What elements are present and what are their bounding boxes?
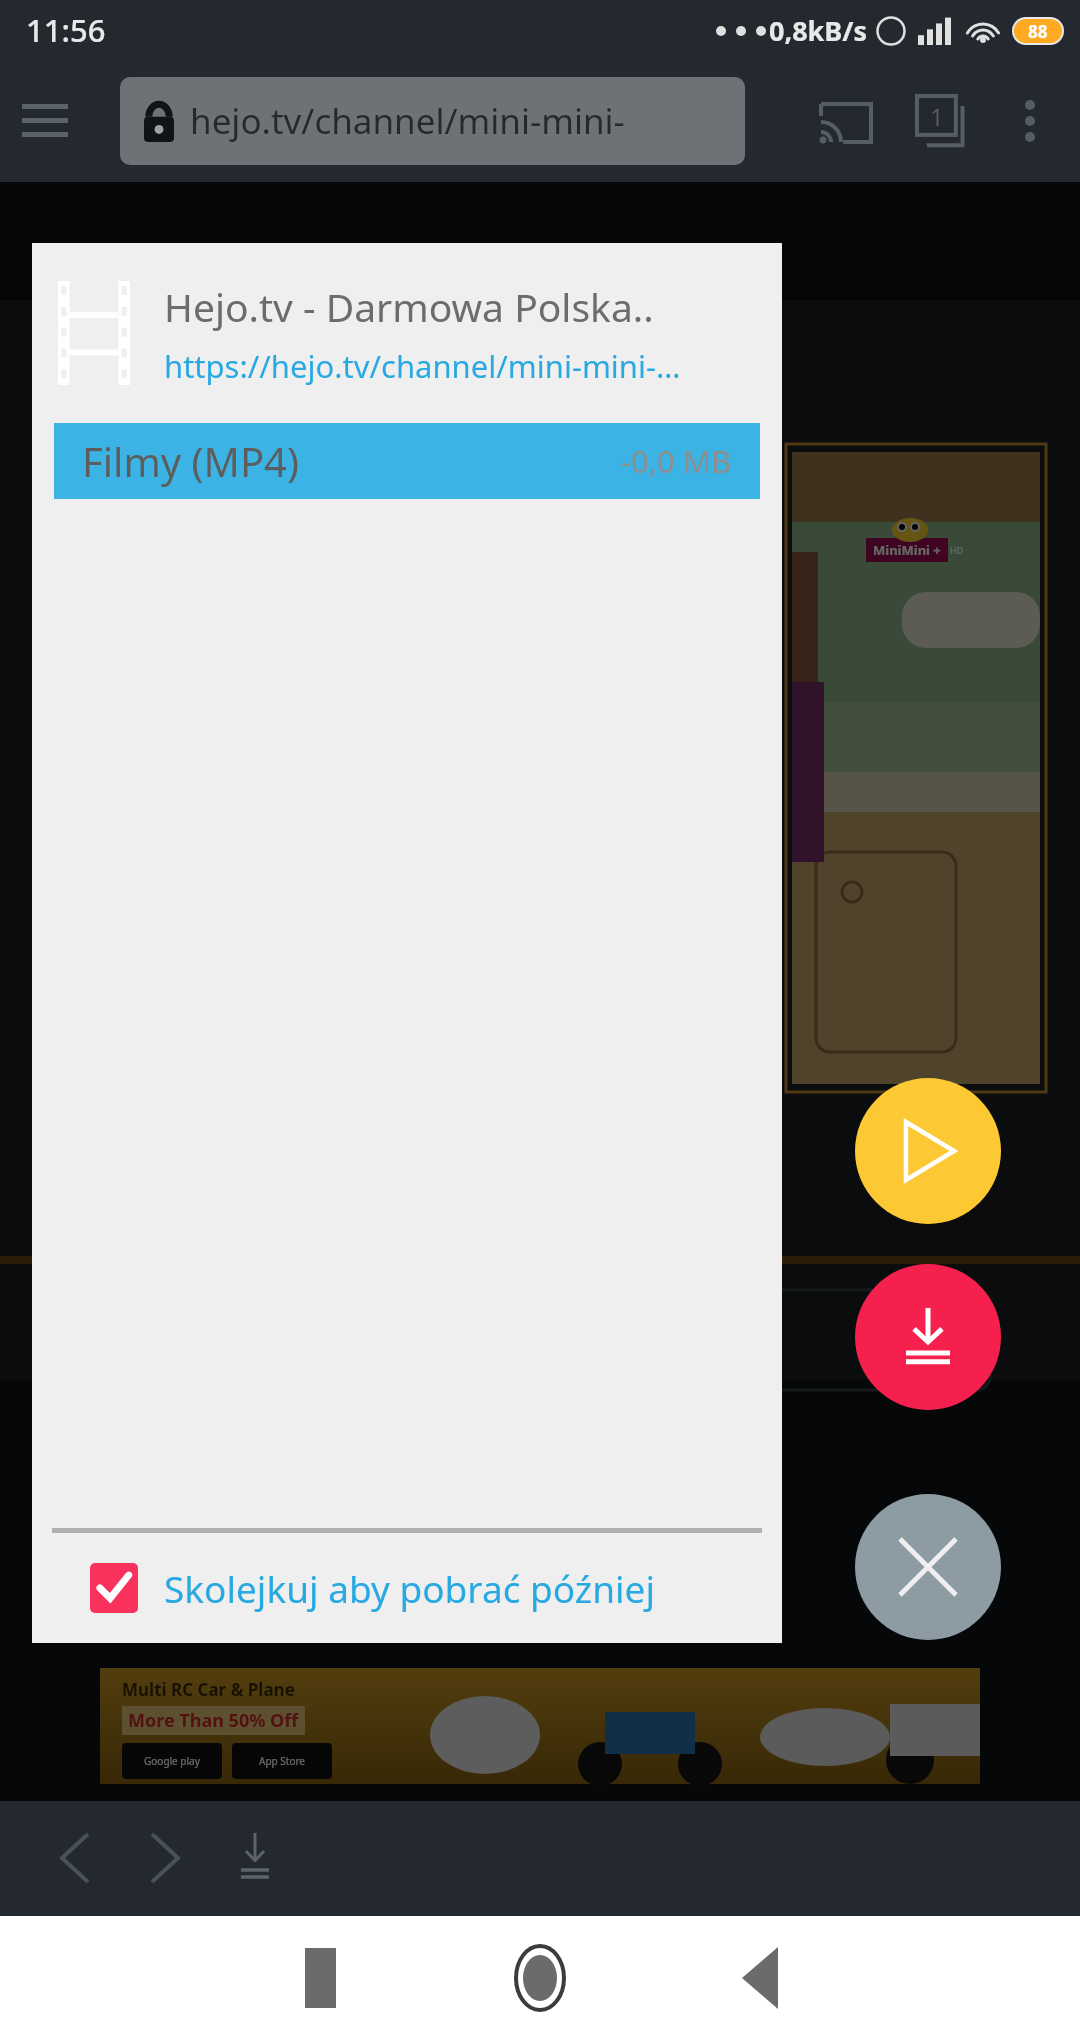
button[interactable]: Download xyxy=(855,1264,1001,1410)
button[interactable]: Close xyxy=(855,1494,1001,1640)
button[interactable]: Back xyxy=(30,1813,120,1903)
button[interactable]: Skolejkuj aby pobrać później xyxy=(32,1533,782,1643)
staticText: 88 xyxy=(1028,20,1048,43)
button[interactable]: Home xyxy=(485,1923,595,2033)
staticText: More Than 50% Off xyxy=(128,1708,299,1733)
staticText: 11:56 xyxy=(26,9,106,51)
staticText: App Store xyxy=(259,1754,306,1768)
button[interactable]: Play xyxy=(855,1078,1001,1224)
button[interactable]: Tabs xyxy=(894,73,990,169)
staticText: MiniMini + xyxy=(873,541,941,559)
staticText: Google play xyxy=(144,1754,200,1768)
staticText: Skolejkuj aby pobrać później xyxy=(164,1563,656,1613)
staticText: 0,8kB/s xyxy=(769,12,868,49)
button[interactable]: hejo.tv/channel/mini-mini- xyxy=(120,77,745,165)
staticText: https://hejo.tv/channel/mini-mini-… xyxy=(164,345,681,387)
staticText: Hejo.tv - Darmowa Polska.. xyxy=(164,280,654,333)
button[interactable]: Cast xyxy=(798,73,894,169)
button[interactable]: Back xyxy=(705,1923,815,2033)
staticText: -0,0 MB xyxy=(621,440,732,482)
button[interactable]: Recent apps xyxy=(265,1923,375,2033)
button[interactable]: Forward xyxy=(120,1813,210,1903)
button[interactable]: Downloads xyxy=(210,1813,300,1903)
staticText: 1 xyxy=(930,100,944,133)
button[interactable]: Menu xyxy=(0,76,90,166)
button[interactable]: Filmy (MP4) xyxy=(54,423,760,499)
staticText: hejo.tv/channel/mini-mini- xyxy=(190,97,625,145)
staticText: Filmy (MP4) xyxy=(82,434,299,488)
button[interactable]: More options xyxy=(990,81,1070,161)
staticText: Multi RC Car & Plane xyxy=(122,1678,295,1701)
staticText: HD xyxy=(950,544,964,556)
